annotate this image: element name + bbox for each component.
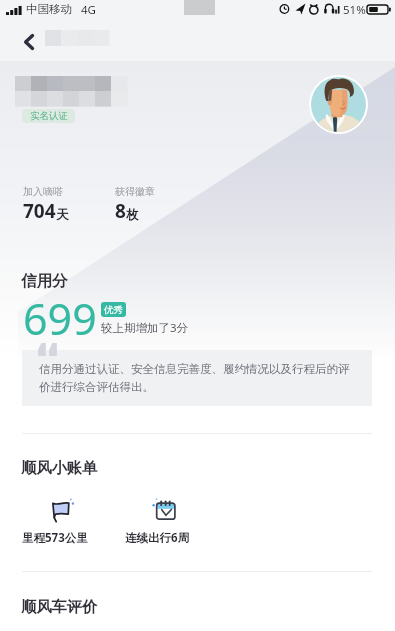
staticText: 699 — [23, 289, 97, 348]
staticText: 加入嘀嗒 — [23, 185, 63, 198]
button[interactable]: 优秀 — [101, 302, 126, 317]
staticText: 51% — [343, 2, 366, 18]
staticText: 实名认证 — [30, 110, 68, 122]
staticText: 信用分 — [21, 271, 68, 291]
staticText: 顺风车评价 — [21, 597, 97, 616]
staticText: 枚 — [126, 207, 139, 223]
button[interactable]: Back — [13, 26, 44, 57]
staticText: 天 — [56, 207, 69, 223]
staticText: 里程573公里 — [22, 530, 88, 546]
staticText: 获得徽章 — [115, 185, 155, 198]
staticText: 顺风小账单 — [21, 458, 97, 477]
staticText: 连续出行6周 — [125, 530, 190, 546]
staticText: 较上期增加了3分 — [101, 320, 189, 336]
staticText: 中国移动 — [26, 2, 72, 16]
staticText: 信用分通过认证、安全信息完善度、履约情况以及行程后的评价进行综合评估得出。 — [39, 362, 359, 395]
staticText: 优秀 — [104, 304, 123, 316]
staticText: 8 — [115, 198, 126, 224]
staticText: 4G — [81, 2, 96, 18]
button[interactable]: 里程573公里 — [18, 492, 94, 546]
staticText: 704 — [23, 198, 56, 224]
button[interactable]: 连续出行6周 — [121, 492, 197, 546]
button[interactable]: 实名认证 — [22, 109, 75, 123]
